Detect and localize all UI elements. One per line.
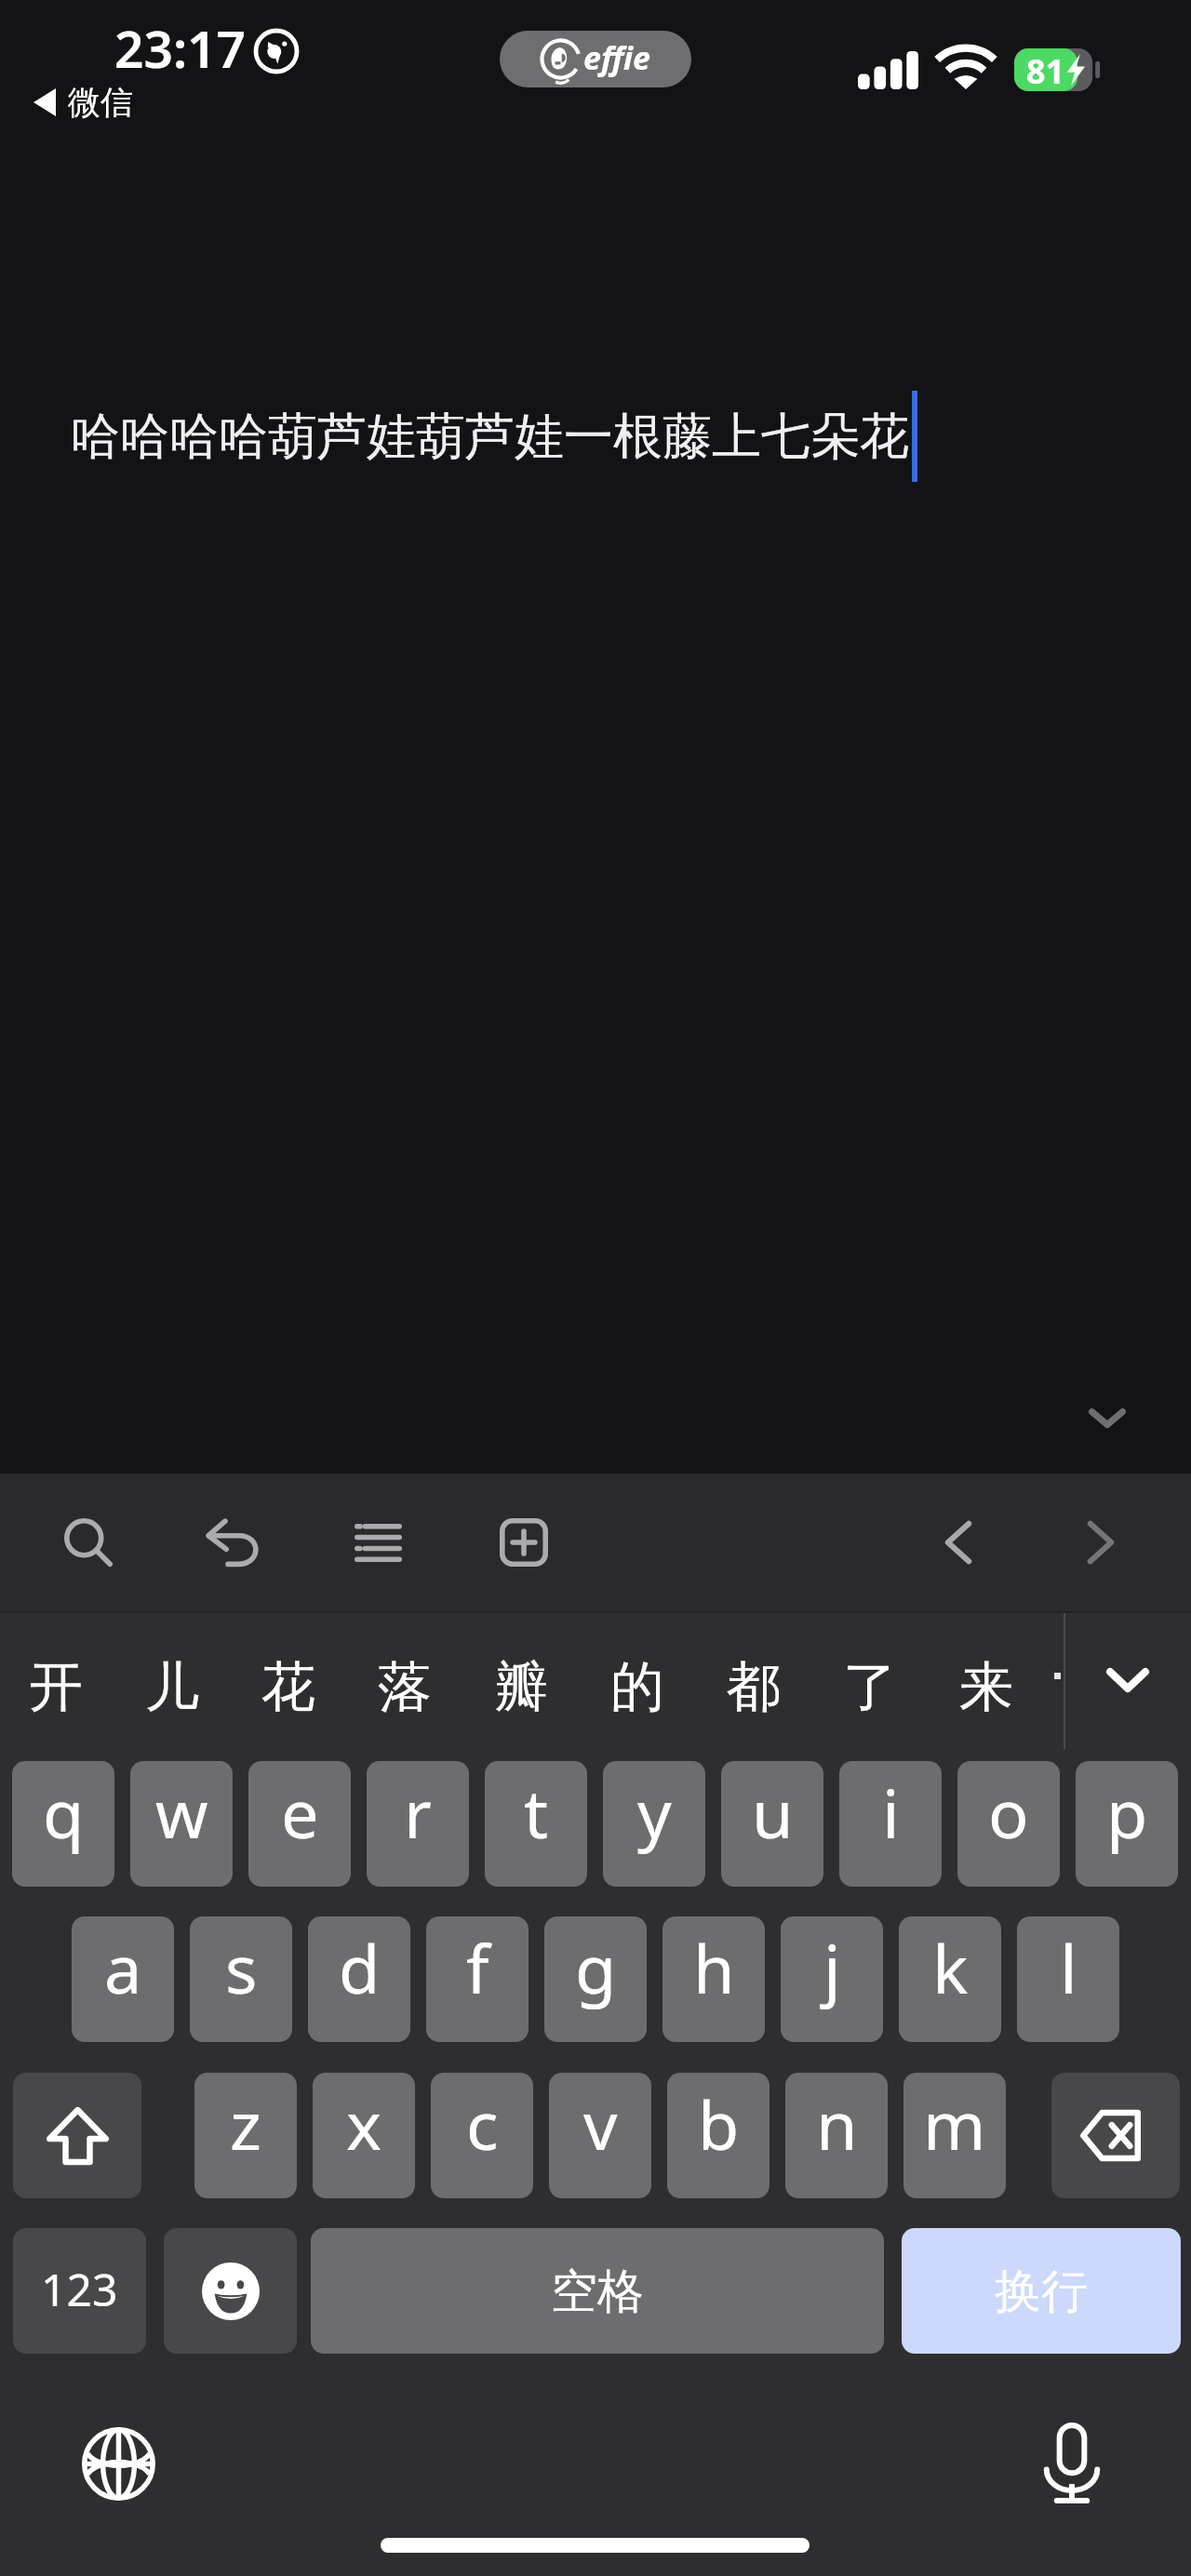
button[interactable]: 来: [928, 1625, 1044, 1749]
staticText: 花: [261, 1653, 315, 1721]
staticText: j: [823, 1922, 841, 2013]
button[interactable]: a: [72, 1916, 174, 2042]
button[interactable]: w: [130, 1761, 233, 1887]
staticText: s: [225, 1922, 258, 2013]
staticText: 哈哈哈哈葫芦娃葫芦娃一根藤上七朵花: [71, 406, 909, 468]
button[interactable]: i: [839, 1761, 942, 1887]
staticText: z: [230, 2078, 261, 2169]
button[interactable]: Change keyboard: [70, 2415, 167, 2512]
staticText: 换行: [995, 2262, 1088, 2321]
staticText: 落: [378, 1653, 432, 1721]
staticText: 81: [1026, 48, 1065, 91]
staticText: 瓣: [494, 1653, 548, 1721]
button[interactable]: Undo: [189, 1498, 278, 1587]
button[interactable]: Add: [479, 1498, 569, 1587]
staticText: 空格: [551, 2262, 644, 2321]
button[interactable]: d: [308, 1916, 410, 2042]
staticText: b: [698, 2078, 740, 2169]
staticText: x: [346, 2078, 382, 2169]
button[interactable]: 了: [811, 1625, 928, 1749]
button[interactable]: p: [1076, 1761, 1178, 1887]
button[interactable]: y: [603, 1761, 705, 1887]
staticText: d: [339, 1922, 381, 2013]
button[interactable]: e: [248, 1761, 351, 1887]
staticText: 123: [41, 2259, 118, 2319]
button[interactable]: Next: [1056, 1498, 1145, 1587]
staticText: effie: [583, 36, 650, 79]
button[interactable]: Shift: [13, 2073, 141, 2198]
staticText: f: [466, 1922, 489, 2013]
button[interactable]: Hide candidates: [1079, 1632, 1176, 1728]
staticText: 来: [959, 1653, 1013, 1721]
button[interactable]: g: [544, 1916, 647, 2042]
button[interactable]: r: [367, 1761, 469, 1887]
button[interactable]: l: [1017, 1916, 1119, 2042]
staticText: c: [466, 2078, 499, 2169]
staticText: w: [155, 1767, 208, 1858]
button[interactable]: 空格: [311, 2228, 884, 2354]
button[interactable]: 落: [346, 1625, 462, 1749]
button[interactable]: Emoji: [164, 2228, 297, 2354]
staticText: y: [637, 1767, 672, 1858]
staticText: u: [752, 1767, 794, 1858]
button[interactable]: f: [426, 1916, 529, 2042]
button[interactable]: Search: [44, 1498, 133, 1587]
staticText: 开: [29, 1653, 83, 1721]
button[interactable]: 花: [230, 1625, 346, 1749]
staticText: 23:17: [114, 13, 247, 83]
button[interactable]: 儿: [114, 1625, 230, 1749]
staticText: 微信: [68, 82, 133, 123]
staticText: k: [932, 1922, 969, 2013]
staticText: q: [43, 1767, 85, 1858]
staticText: v: [583, 2078, 618, 2169]
button[interactable]: 123: [13, 2228, 146, 2354]
button[interactable]: 换行: [902, 2228, 1181, 2354]
staticText: l: [1060, 1922, 1077, 2013]
button[interactable]: v: [549, 2073, 651, 2198]
button[interactable]: 23:17: [0, 0, 1191, 1474]
staticText: 都: [727, 1653, 781, 1721]
button[interactable]: n: [785, 2073, 888, 2198]
button[interactable]: k: [899, 1916, 1001, 2042]
button[interactable]: q: [12, 1761, 114, 1887]
button[interactable]: 微信: [33, 82, 133, 123]
staticText: i: [882, 1767, 900, 1858]
staticText: 儿: [145, 1653, 199, 1721]
button[interactable]: o: [957, 1761, 1060, 1887]
staticText: g: [575, 1922, 617, 2013]
staticText: n: [816, 2078, 858, 2169]
button[interactable]: Format list: [333, 1498, 422, 1587]
staticText: h: [693, 1922, 735, 2013]
staticText: a: [104, 1922, 142, 2013]
button[interactable]: j: [781, 1916, 883, 2042]
staticText: m: [923, 2078, 986, 2169]
button[interactable]: Backspace: [1051, 2073, 1180, 2198]
button[interactable]: 都: [695, 1625, 811, 1749]
button[interactable]: x: [313, 2073, 415, 2198]
button[interactable]: h: [662, 1916, 765, 2042]
button[interactable]: b: [667, 2073, 769, 2198]
button[interactable]: m: [903, 2073, 1006, 2198]
button[interactable]: 的: [579, 1625, 695, 1749]
button[interactable]: c: [431, 2073, 533, 2198]
button[interactable]: 开: [0, 1625, 114, 1749]
button[interactable]: Previous: [914, 1498, 1003, 1587]
button[interactable]: s: [190, 1916, 292, 2042]
staticText: o: [988, 1767, 1029, 1858]
button[interactable]: t: [485, 1761, 587, 1887]
button[interactable]: 瓣: [462, 1625, 579, 1749]
staticText: t: [524, 1767, 548, 1858]
staticText: p: [1106, 1767, 1148, 1858]
staticText: r: [404, 1767, 432, 1858]
button[interactable]: u: [721, 1761, 823, 1887]
staticText: 了: [843, 1653, 897, 1721]
staticText: 的: [610, 1653, 664, 1721]
staticText: e: [281, 1767, 319, 1858]
button[interactable]: Collapse: [1063, 1373, 1152, 1462]
button[interactable]: z: [194, 2073, 297, 2198]
button[interactable]: Dictate: [1024, 2414, 1120, 2511]
